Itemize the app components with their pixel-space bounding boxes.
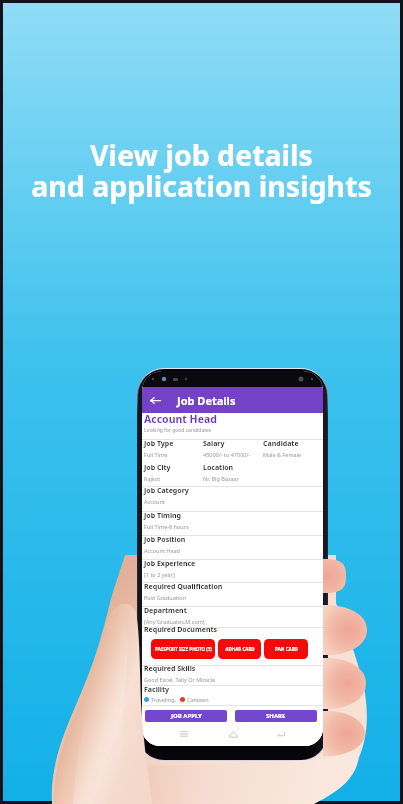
button[interactable]: JOB APPLY	[145, 710, 227, 722]
staticText: Department	[144, 606, 187, 616]
staticText: SHARE	[266, 712, 286, 720]
staticText: Candidate	[263, 439, 299, 449]
button[interactable]: Recent apps	[177, 727, 191, 741]
staticText: Full Time	[144, 451, 168, 458]
staticText: Account Head	[144, 547, 180, 554]
staticText: Job Category	[144, 486, 189, 496]
button[interactable]: SHARE	[235, 710, 317, 722]
staticText: Rajkot	[144, 475, 161, 482]
button[interactable]: Back	[274, 727, 288, 741]
staticText: Full Time-8 hours	[144, 523, 189, 530]
staticText: Job Type	[144, 439, 174, 449]
staticText: Looking for good candidates	[144, 427, 212, 434]
staticText: Account	[144, 498, 165, 505]
staticText: Facility	[144, 685, 169, 695]
button[interactable]: Home	[226, 727, 240, 741]
staticText: Job Experience	[144, 559, 196, 569]
staticText: [Any Graduates,M.com]	[144, 618, 205, 625]
staticText: ADHAR CARD	[225, 646, 255, 652]
staticText: Male & Female	[263, 451, 302, 458]
staticText: 45000/- to 47000/-	[203, 451, 251, 458]
staticText: PAN CARD	[275, 646, 298, 652]
staticText: Account Head	[144, 412, 217, 426]
button[interactable]: Back	[145, 390, 165, 410]
staticText: Location	[203, 463, 234, 473]
staticText: Job City	[144, 463, 171, 473]
staticText: Job Details	[177, 393, 236, 408]
staticText: PASSPORT SIZE PHOTO (3)	[155, 646, 212, 652]
staticText: Job Timing	[144, 511, 181, 521]
staticText: Required Skills	[144, 664, 196, 674]
staticText: Job Position	[144, 535, 186, 545]
staticText: Required Documents	[144, 625, 218, 635]
button[interactable]: PAN CARD	[264, 639, 308, 659]
staticText: Good Excel, Tally Or Miracle	[144, 676, 215, 683]
staticText: Post Graduation	[144, 594, 186, 601]
staticText: Nr. Big Bazaar	[203, 475, 239, 482]
staticText: View job details and application insight…	[31, 136, 372, 205]
staticText: JOB APPLY	[171, 712, 202, 720]
staticText: Required Qualification	[144, 582, 223, 592]
staticText: Traveling,	[151, 696, 177, 703]
button[interactable]: PASSPORT SIZE PHOTO (3)	[151, 639, 215, 659]
staticText: Salary	[203, 439, 225, 449]
staticText: [1 to 2 year]	[144, 571, 175, 578]
staticText: Canteen	[187, 696, 209, 703]
button[interactable]: ADHAR CARD	[218, 639, 261, 659]
